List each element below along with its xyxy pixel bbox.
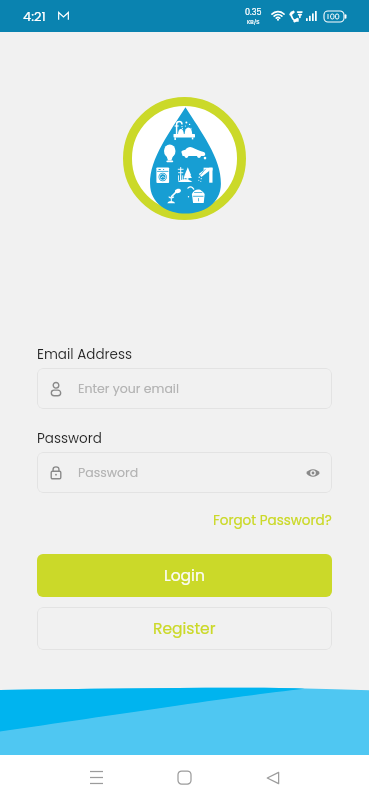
staticText: Password xyxy=(78,464,139,481)
staticText: Register xyxy=(153,618,216,640)
button[interactable]: Register xyxy=(37,607,332,650)
other: Signal xyxy=(306,11,318,21)
other: Show password xyxy=(306,468,320,478)
staticText: Email Address xyxy=(37,345,133,364)
other: Wi-Fi xyxy=(271,11,285,22)
staticText: Login xyxy=(164,565,205,587)
other: Calls xyxy=(290,11,303,22)
other: Battery xyxy=(324,11,346,22)
button[interactable]: Enter your email xyxy=(50,368,320,409)
staticText: Password xyxy=(37,429,102,448)
staticText: 4:21 xyxy=(23,7,46,25)
button[interactable]: Recent apps xyxy=(74,755,119,800)
button[interactable]: Back xyxy=(250,755,295,800)
staticText: Enter your email xyxy=(78,380,179,397)
staticText: 0.35 xyxy=(245,7,262,18)
button[interactable]: Home xyxy=(162,755,207,800)
other: Gmail xyxy=(58,12,69,20)
staticText: KB/S xyxy=(247,18,260,26)
button[interactable]: Forgot Password? xyxy=(213,511,332,530)
button[interactable]: Password xyxy=(50,452,320,493)
button[interactable]: Login xyxy=(37,554,332,597)
